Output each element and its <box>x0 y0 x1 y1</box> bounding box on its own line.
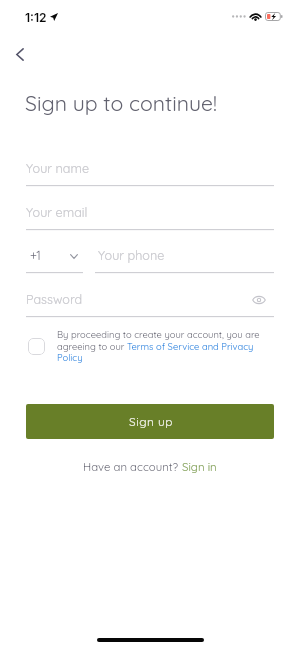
button[interactable]: +1 <box>26 243 83 267</box>
button[interactable]: Sign up <box>26 404 274 439</box>
staticText: By proceeding to create your account, yo… <box>57 329 273 363</box>
staticText: +1 <box>30 248 41 263</box>
staticText: Have an account? <box>83 460 182 474</box>
staticText: Sign up <box>129 414 173 429</box>
staticText: Your name <box>26 160 90 176</box>
staticText: 1:12 <box>25 10 47 25</box>
button[interactable]: Back <box>3 37 37 71</box>
staticText: Password <box>26 291 83 307</box>
staticText: Sign up to continue! <box>25 90 217 117</box>
button[interactable]: Show password <box>247 288 271 312</box>
button[interactable]: Sign in <box>182 460 217 474</box>
staticText: Your phone <box>98 247 165 263</box>
staticText: Your email <box>26 204 88 220</box>
button[interactable]: Accept terms and conditions <box>28 338 45 355</box>
